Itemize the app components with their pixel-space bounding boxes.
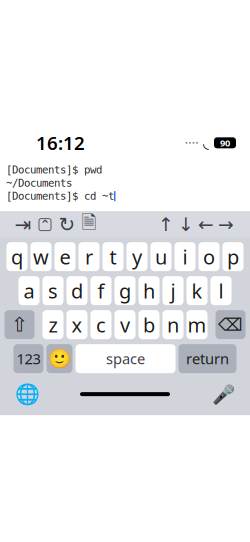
button[interactable]: d [66,276,87,305]
staticText: o [203,243,215,270]
button[interactable]: h [138,276,159,305]
staticText: p [227,243,239,270]
staticText: b [143,311,155,338]
staticText: d [71,277,83,304]
button[interactable]: c [90,310,111,339]
staticText: 🌐 [14,383,39,406]
button[interactable]: j [162,276,183,305]
button[interactable]: w [30,242,51,271]
button[interactable]: e [54,242,75,271]
button[interactable]: n [162,310,183,339]
staticText: ← [198,214,214,235]
staticText: space [106,349,145,368]
staticText: q [11,243,23,270]
button[interactable]: y [126,242,147,271]
staticText: ↻ [58,213,75,236]
button[interactable]: s [42,276,63,305]
staticText: k [191,277,202,304]
staticText: ~/Documents [6,177,72,189]
button[interactable]: t [102,242,123,271]
button[interactable]: Emoji [46,344,72,373]
staticText: n [167,311,179,338]
button[interactable]: Switch keyboard [12,381,42,407]
staticText: j [170,277,175,304]
staticText: c [96,311,106,338]
button[interactable]: r [78,242,99,271]
staticText: return [186,349,229,368]
button[interactable]: a [18,276,39,305]
button[interactable]: z [42,310,63,339]
staticText: v [120,311,130,338]
button[interactable]: Dictation [208,381,238,407]
button[interactable]: History [56,212,78,238]
staticText: ⌫ [218,315,243,334]
staticText: z [48,311,57,338]
staticText: s [48,277,58,304]
staticText: 🎤 [211,383,234,405]
staticText: w [33,243,49,270]
staticText: h [143,277,155,304]
staticText: ↑ [158,214,174,235]
button[interactable]: x [66,310,87,339]
button[interactable]: space [75,344,175,373]
button[interactable]: Right [216,212,236,238]
staticText: y [132,243,142,270]
button[interactable]: p [222,242,243,271]
staticText: i [182,243,187,270]
button[interactable]: Paste [78,212,100,238]
button[interactable]: b [138,310,159,339]
staticText: 🗎 [81,209,96,240]
button[interactable]: o [198,242,219,271]
staticText: l [218,277,223,304]
staticText: ⇧ [11,313,28,336]
button[interactable]: Left [196,212,216,238]
staticText: → [218,214,234,235]
staticText: ↓ [178,214,194,235]
staticText: a [23,277,34,304]
staticText: f [97,277,104,304]
staticText: e [59,243,70,270]
button[interactable]: Delete [215,310,245,339]
staticText: t [109,243,116,270]
button[interactable]: i [174,242,195,271]
button[interactable]: return [178,344,236,373]
button[interactable]: g [114,276,135,305]
staticText: 90 [220,137,230,149]
staticText: m [187,311,206,338]
staticText: r [85,243,93,270]
staticText: ⌃ [39,217,50,232]
staticText: 16:12 [36,130,85,155]
button[interactable]: q [6,242,27,271]
staticText: ⇥ [14,213,31,236]
staticText: x [71,311,82,338]
staticText: 123 [16,349,40,368]
button[interactable]: Down [176,212,196,238]
staticText: 🙂 [48,348,71,369]
button[interactable]: Shift [4,310,34,339]
staticText: [Documents]$ cd ~t [6,190,114,202]
button[interactable]: v [114,310,135,339]
staticText: u [155,243,167,270]
button[interactable]: u [150,242,171,271]
button[interactable]: Tab [12,212,34,238]
button[interactable]: m [186,310,207,339]
button[interactable]: Control [34,212,56,238]
staticText: [Documents]$ pwd [6,164,102,176]
staticText: ◟ [203,134,209,151]
staticText: g [119,277,131,304]
button[interactable]: 123 [13,344,43,373]
button[interactable]: f [90,276,111,305]
button[interactable]: Up [156,212,176,238]
button[interactable]: l [210,276,231,305]
button[interactable]: k [186,276,207,305]
